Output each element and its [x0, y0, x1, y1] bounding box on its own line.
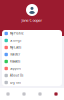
- staticText: About Us: [10, 74, 23, 77]
- button[interactable]: Log Out: [2, 79, 62, 86]
- button[interactable]: My Profile: [2, 30, 62, 37]
- button[interactable]: Transfer: [2, 51, 62, 58]
- staticText: Transfer: [10, 53, 20, 56]
- staticText: Log Out: [10, 81, 21, 84]
- staticText: My Cards: [10, 46, 21, 49]
- staticText: Rewards: [10, 60, 20, 63]
- button[interactable]: About Us: [2, 72, 62, 79]
- button[interactable]: My Cards: [2, 44, 62, 51]
- button[interactable]: Rewards: [2, 58, 62, 65]
- button[interactable]: Support: [2, 65, 62, 72]
- button[interactable]: Activity: [32, 88, 48, 100]
- button[interactable]: Cards: [16, 88, 32, 100]
- staticText: Jane Cooper: [21, 17, 42, 23]
- button[interactable]: Home: [0, 88, 16, 100]
- staticText: Support: [10, 67, 21, 70]
- staticText: Settings: [10, 39, 21, 42]
- button[interactable]: Profile: [48, 88, 64, 100]
- staticText: My Profile: [10, 32, 24, 35]
- button[interactable]: Settings: [2, 37, 62, 44]
